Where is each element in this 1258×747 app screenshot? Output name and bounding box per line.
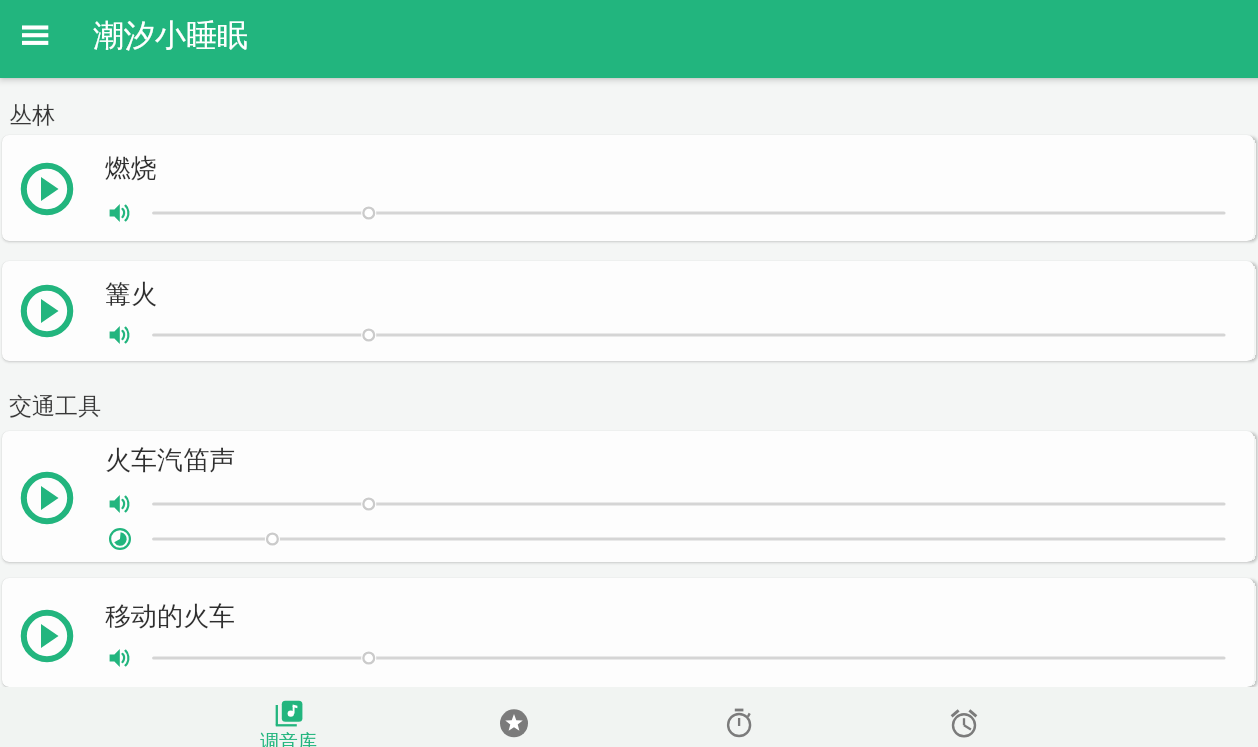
- staticText: 丛林: [9, 101, 55, 130]
- button[interactable]: [108, 643, 1254, 673]
- staticText: 交通工具: [9, 392, 101, 421]
- staticText: 潮汐小睡眠: [93, 16, 248, 55]
- button[interactable]: [108, 489, 1254, 519]
- button[interactable]: [108, 198, 1254, 228]
- button[interactable]: [19, 161, 75, 217]
- button[interactable]: [626, 687, 851, 747]
- staticText: 篝火: [105, 278, 157, 311]
- button[interactable]: [13, 14, 57, 58]
- staticText: 火车汽笛声: [105, 444, 235, 477]
- button[interactable]: [108, 524, 1254, 554]
- staticText: 燃烧: [105, 152, 157, 185]
- staticText: 调音库: [260, 730, 317, 747]
- button[interactable]: 调音库: [176, 687, 401, 747]
- button[interactable]: [851, 687, 1076, 747]
- button[interactable]: [19, 608, 75, 664]
- button[interactable]: [19, 283, 75, 339]
- button[interactable]: [108, 320, 1254, 350]
- staticText: 移动的火车: [105, 600, 235, 633]
- button[interactable]: [401, 687, 626, 747]
- button[interactable]: [19, 470, 75, 526]
